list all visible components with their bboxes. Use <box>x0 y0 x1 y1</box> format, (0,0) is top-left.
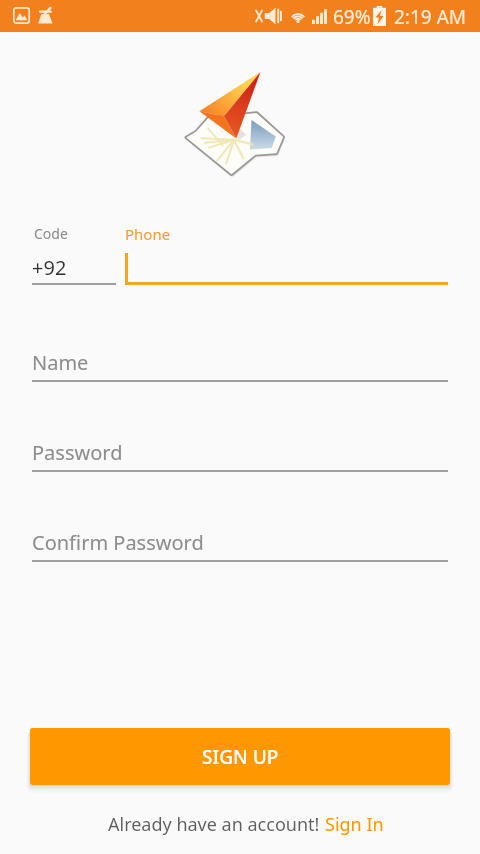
staticText: +92 <box>32 254 67 281</box>
staticText: 2:19 AM <box>394 4 467 30</box>
staticText: Password <box>32 439 123 466</box>
button[interactable]: Confirm Password <box>32 529 448 565</box>
staticText: Name <box>32 349 89 376</box>
button[interactable]: Code <box>32 220 116 285</box>
staticText: Confirm Password <box>32 529 204 556</box>
button[interactable]: Sign In <box>325 812 384 837</box>
button[interactable]: Name <box>32 349 448 385</box>
staticText: Sign In <box>325 812 384 837</box>
staticText: Already have an account! <box>108 812 320 837</box>
staticText: Phone <box>125 224 171 244</box>
staticText: 69% <box>333 4 371 30</box>
staticText: Code <box>34 224 68 243</box>
staticText: SIGN UP <box>202 744 279 770</box>
button[interactable]: Phone <box>125 220 448 285</box>
button[interactable]: SIGN UP <box>30 728 450 785</box>
button[interactable]: Password <box>32 439 448 475</box>
